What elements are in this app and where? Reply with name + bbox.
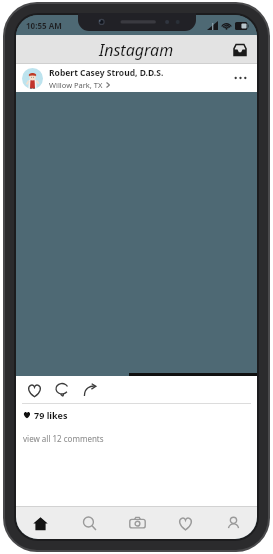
button[interactable]: Camera [113, 507, 161, 539]
button[interactable]: Share [78, 378, 102, 402]
button[interactable]: Activity [161, 507, 209, 539]
staticText: 10:55 AM [26, 20, 62, 31]
button[interactable]: More options [229, 67, 251, 89]
button[interactable]: Profile [209, 507, 257, 539]
staticText: Robert Casey Stroud, D.D.S. [49, 67, 164, 79]
button[interactable]: Search [65, 507, 113, 539]
staticText: view all 12 comments [23, 433, 104, 444]
button[interactable]: Home [16, 507, 65, 539]
button[interactable]: view all 12 comments [16, 425, 257, 451]
staticText: 79 likes [34, 409, 68, 421]
button[interactable]: 79 likes [16, 404, 257, 425]
button[interactable]: Direct messages inbox [229, 39, 251, 61]
button[interactable]: Robert Casey Stroud, D.D.S. [16, 64, 257, 92]
button[interactable]: Like [22, 378, 46, 402]
staticText: Instagram [99, 39, 174, 61]
button[interactable]: Comment [50, 378, 74, 402]
staticText: Willow Park, TX [49, 80, 103, 90]
